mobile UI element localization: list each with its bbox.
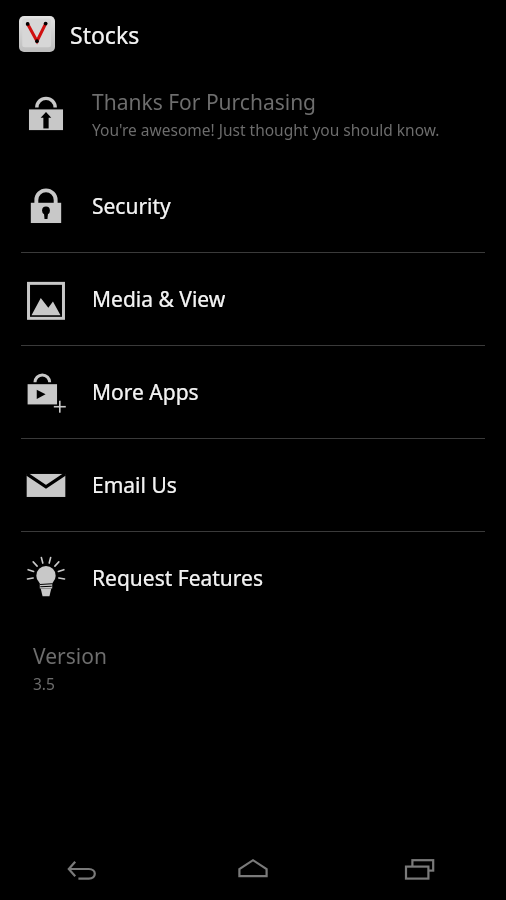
staticText: Email Us (92, 471, 177, 500)
staticText: Version (33, 642, 107, 671)
staticText: Stocks (70, 19, 140, 50)
button[interactable]: Media & View (0, 253, 506, 345)
button[interactable]: Home (168, 838, 337, 900)
button[interactable]: Security (0, 160, 506, 252)
staticText: Media & View (92, 285, 226, 314)
staticText: Thanks For Purchasing (92, 88, 317, 117)
button[interactable]: Thanks For Purchasing (0, 68, 506, 160)
button[interactable]: Back (0, 838, 168, 900)
staticText: Security (92, 192, 171, 221)
button[interactable]: Request Features (0, 532, 506, 624)
button[interactable]: More Apps (0, 346, 506, 438)
button[interactable]: Recents (337, 838, 506, 900)
staticText: You're awesome! Just thought you should … (92, 119, 440, 140)
button[interactable]: Email Us (0, 439, 506, 531)
staticText: More Apps (92, 378, 199, 407)
staticText: Request Features (92, 564, 263, 593)
staticText: 3.5 (33, 673, 55, 694)
